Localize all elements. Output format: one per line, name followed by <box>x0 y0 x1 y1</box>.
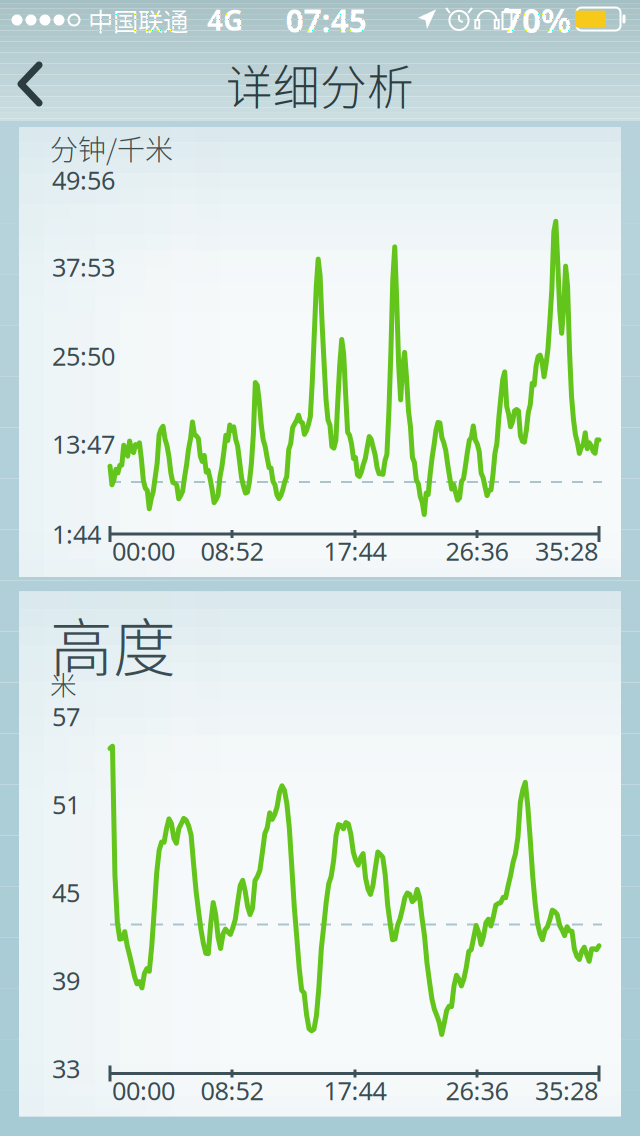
staticText: 57 <box>52 700 80 733</box>
staticText: 33 <box>52 1052 80 1085</box>
staticText: 13:47 <box>52 427 115 461</box>
staticText: 中国联通 <box>88 2 188 38</box>
staticText: 26:36 <box>445 534 508 568</box>
staticText: 08:52 <box>200 1074 263 1107</box>
staticText: 00:00 <box>112 1074 175 1107</box>
staticText: 详细分析 <box>226 50 414 118</box>
staticText: 37:53 <box>52 250 115 284</box>
staticText: 35:28 <box>535 534 598 568</box>
staticText: 00:00 <box>112 534 175 568</box>
staticText: 4G <box>207 1 243 39</box>
staticText: 25:50 <box>52 339 115 373</box>
staticText: 17:44 <box>323 534 386 568</box>
staticText: 1:44 <box>52 517 101 551</box>
staticText: 高度 <box>50 598 176 689</box>
staticText: 45 <box>52 876 80 909</box>
staticText: 39 <box>52 964 80 997</box>
button[interactable]: Back <box>0 45 63 123</box>
staticText: 70% <box>503 0 571 42</box>
staticText: 分钟/千米 <box>50 128 173 168</box>
staticText: 49:56 <box>52 163 115 197</box>
staticText: 26:36 <box>445 1074 508 1107</box>
staticText: 08:52 <box>200 534 263 568</box>
staticText: 35:28 <box>535 1074 598 1107</box>
staticText: 51 <box>52 788 80 821</box>
staticText: 17:44 <box>323 1074 386 1107</box>
staticText: 07:45 <box>285 0 366 41</box>
staticText: 米 <box>50 664 77 703</box>
